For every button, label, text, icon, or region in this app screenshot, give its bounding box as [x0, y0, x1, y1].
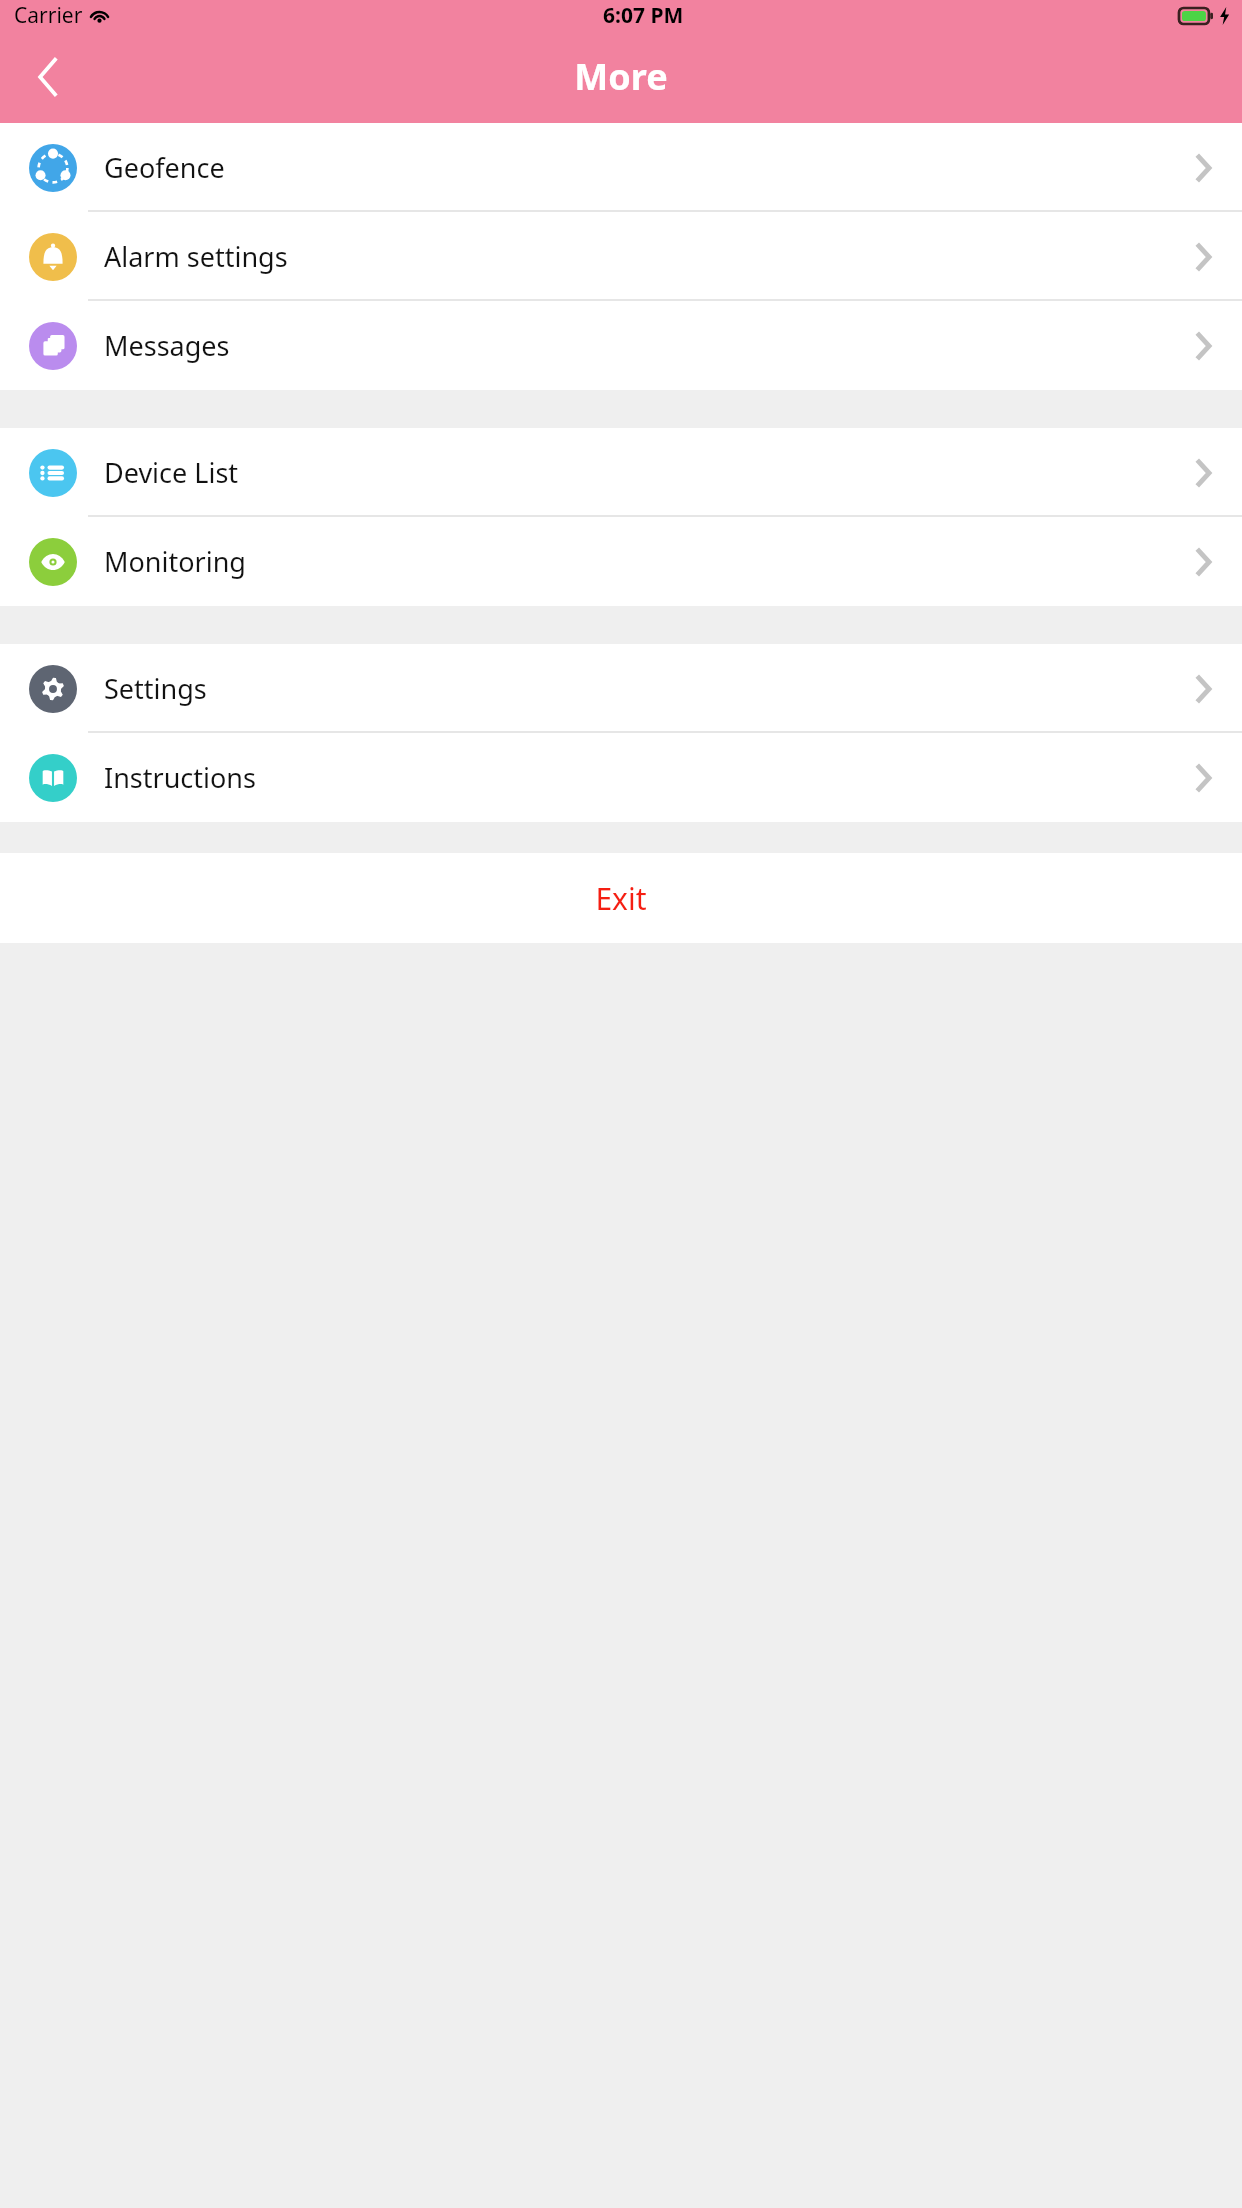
button[interactable]: Messages — [0, 301, 1242, 390]
staticText: Alarm settings — [104, 238, 1196, 275]
staticText: Carrier — [14, 1, 83, 30]
button[interactable]: Alarm settings — [0, 212, 1242, 301]
staticText: Instructions — [104, 759, 1196, 796]
staticText: Monitoring — [104, 543, 1196, 580]
staticText: More — [574, 52, 668, 101]
button[interactable]: Settings — [0, 644, 1242, 733]
button[interactable]: Device List — [0, 428, 1242, 517]
staticText: 6:07 PM — [603, 1, 684, 30]
staticText: Exit — [595, 878, 647, 919]
staticText: Settings — [104, 670, 1196, 707]
staticText: Device List — [104, 454, 1196, 491]
button[interactable]: Back — [18, 47, 78, 107]
staticText: Messages — [104, 327, 1196, 364]
button[interactable]: Instructions — [0, 733, 1242, 822]
button[interactable]: Geofence — [0, 123, 1242, 212]
button[interactable]: Monitoring — [0, 517, 1242, 606]
staticText: Geofence — [104, 149, 1196, 186]
button[interactable]: Exit — [0, 853, 1242, 943]
